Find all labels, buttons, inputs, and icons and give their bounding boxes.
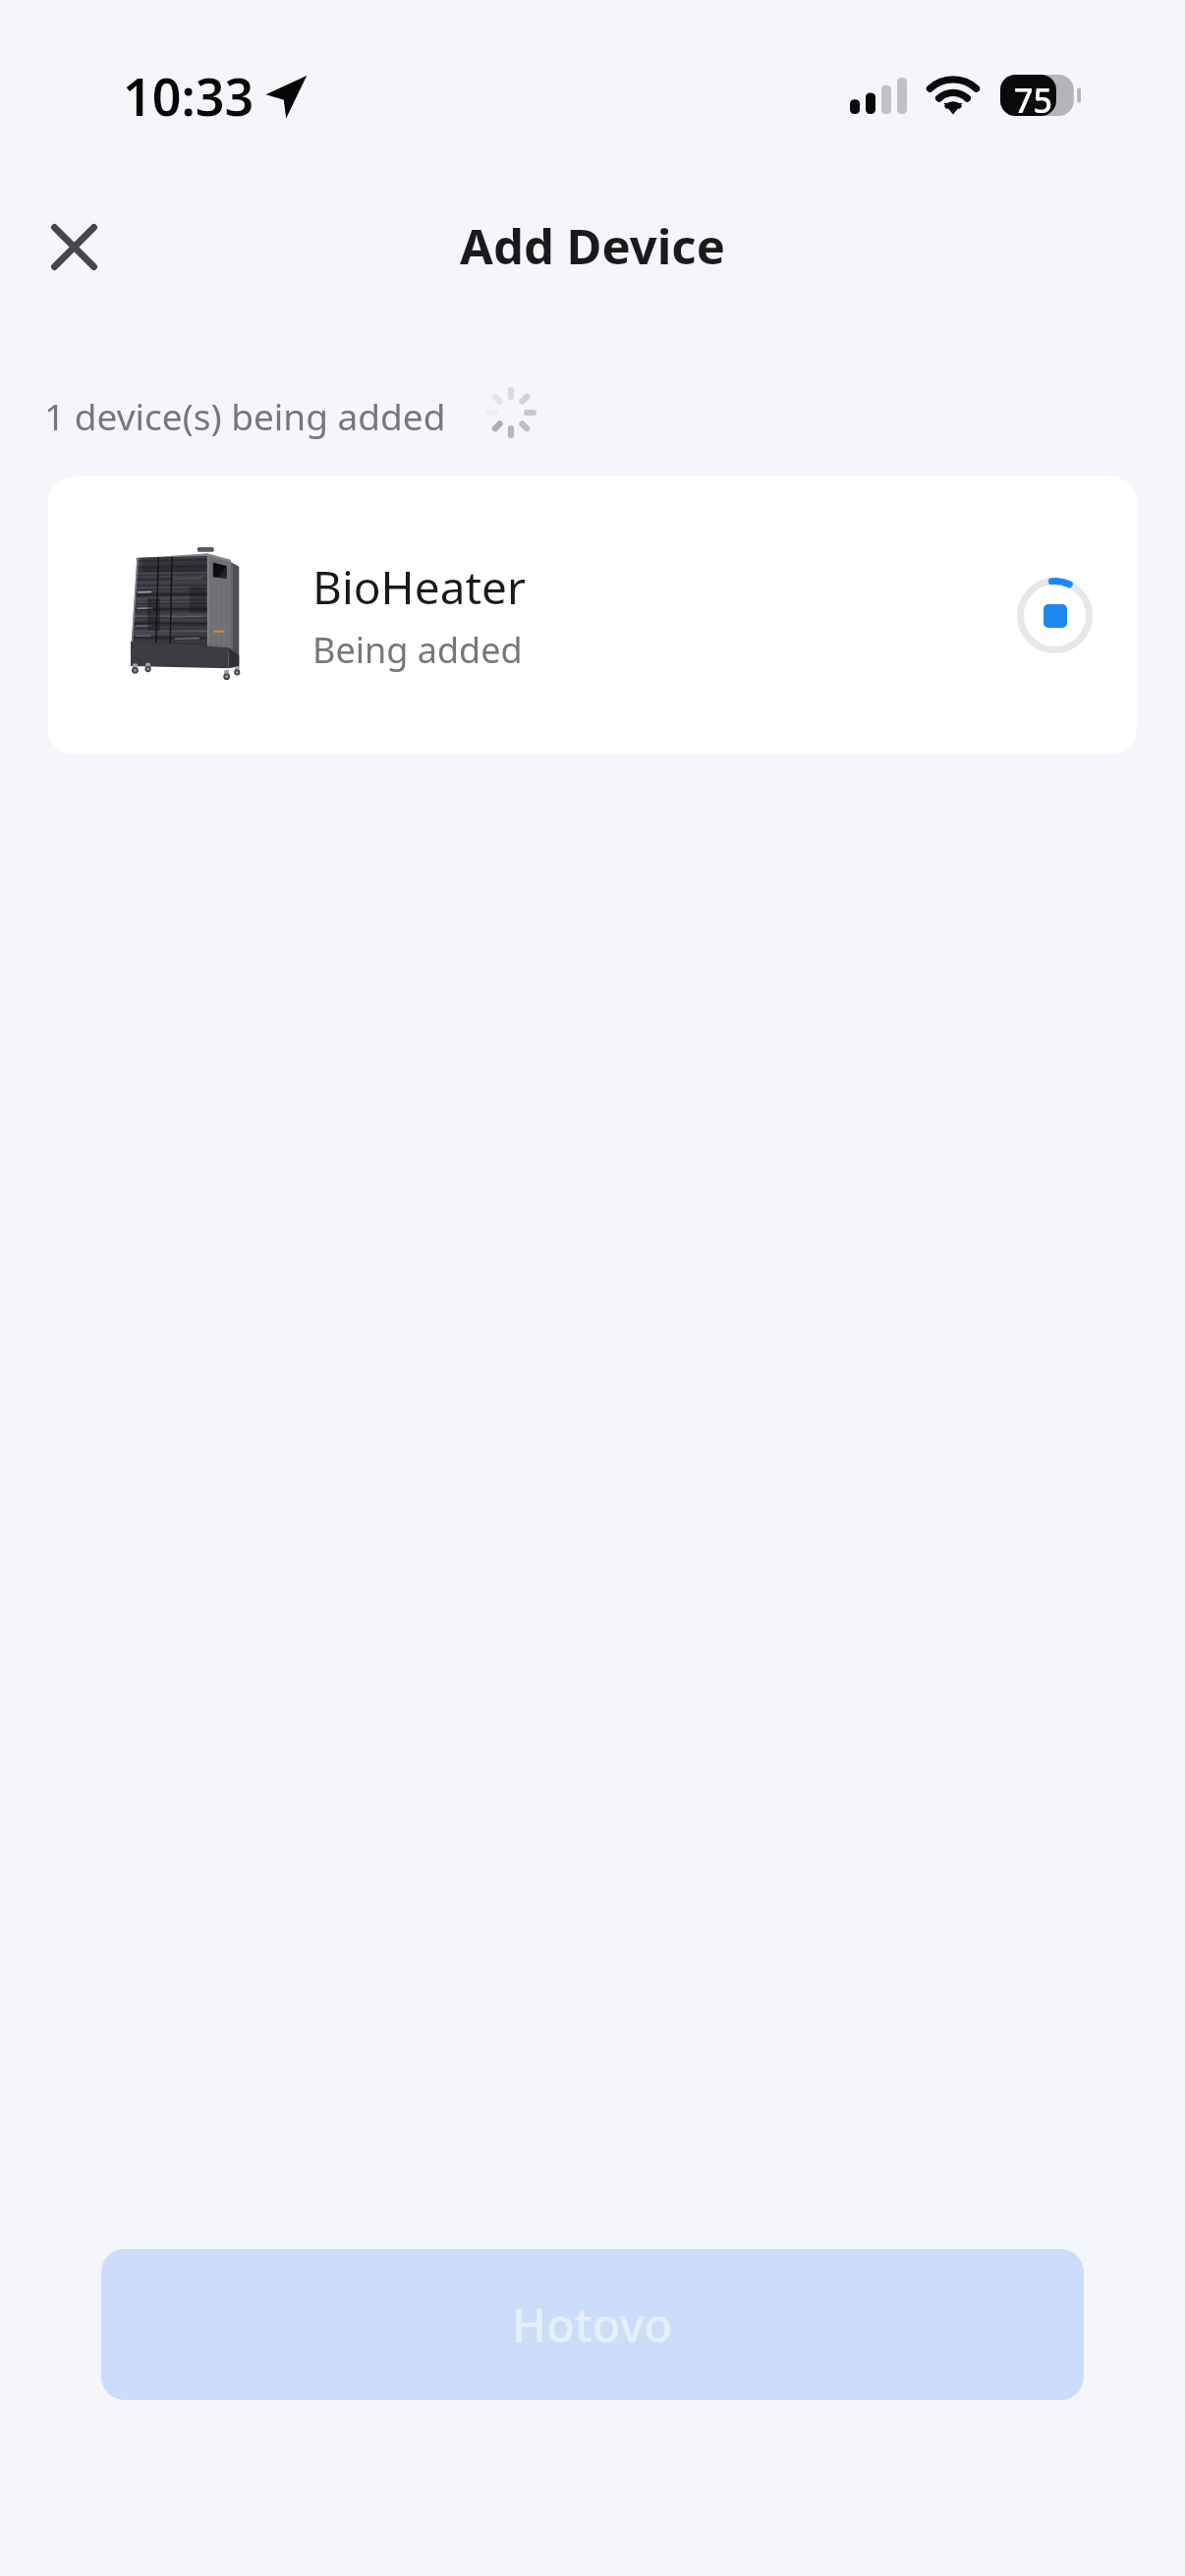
staticText: 1 device(s) being added <box>44 391 446 440</box>
button[interactable]: Hotovo <box>101 2249 1084 2400</box>
staticText: BioHeater <box>312 556 526 618</box>
staticText: Hotovo <box>512 2293 673 2356</box>
staticText: Add Device <box>460 213 725 279</box>
staticText: 75 <box>1014 78 1052 119</box>
button[interactable]: Close <box>28 201 120 293</box>
button[interactable]: BioHeater <box>48 476 1137 755</box>
button[interactable]: Stop adding device <box>1017 578 1093 653</box>
staticText: Being added <box>312 626 523 674</box>
staticText: 10:33 <box>123 61 254 131</box>
